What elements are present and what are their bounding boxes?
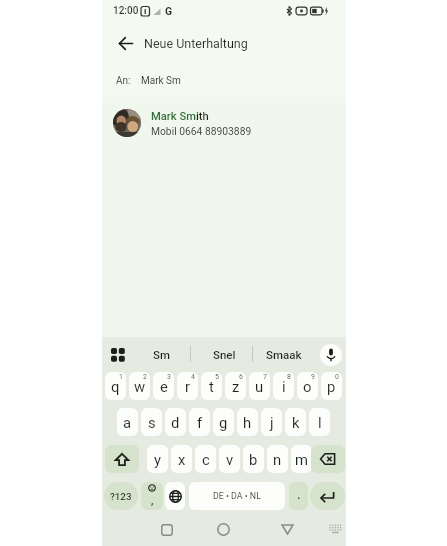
- staticText: n: [273, 451, 282, 468]
- button[interactable]: Smaak: [253, 341, 314, 367]
- staticText: z: [232, 378, 240, 395]
- staticText: d: [171, 414, 180, 431]
- button[interactable]: c: [195, 445, 216, 473]
- button[interactable]: a: [117, 408, 138, 436]
- staticText: m: [295, 451, 308, 468]
- button[interactable]: x: [171, 445, 192, 473]
- button[interactable]: Snel: [194, 341, 255, 367]
- button[interactable]: [273, 372, 294, 400]
- button[interactable]: b: [243, 445, 264, 473]
- staticText: f: [197, 414, 203, 431]
- staticText: ith: [196, 110, 209, 123]
- staticText: i: [282, 378, 286, 395]
- button[interactable]: l: [309, 408, 330, 436]
- staticText: t: [209, 378, 214, 395]
- button[interactable]: [105, 445, 139, 473]
- staticText: j: [270, 414, 274, 431]
- staticText: u: [255, 378, 264, 395]
- button[interactable]: Mark Sm: [102, 102, 346, 143]
- staticText: h: [243, 414, 252, 431]
- staticText: k: [292, 414, 300, 431]
- button[interactable]: [177, 372, 198, 400]
- button[interactable]: v: [219, 445, 240, 473]
- button[interactable]: [165, 482, 185, 510]
- button[interactable]: f: [189, 408, 210, 436]
- button[interactable]: An:: [102, 66, 346, 97]
- staticText: ?123: [110, 491, 132, 502]
- button[interactable]: g: [213, 408, 234, 436]
- staticText: Snel: [213, 348, 236, 361]
- button[interactable]: [110, 347, 125, 362]
- button[interactable]: [225, 372, 246, 400]
- staticText: Neue Unterhaltung: [144, 36, 248, 51]
- button[interactable]: [112, 30, 139, 57]
- staticText: e: [160, 378, 168, 395]
- staticText: v: [226, 451, 234, 468]
- staticText: Mark Sm: [141, 75, 181, 87]
- staticText: p: [327, 378, 336, 395]
- button[interactable]: m: [291, 445, 312, 473]
- button[interactable]: [321, 372, 342, 400]
- staticText: 0: [335, 373, 339, 381]
- button[interactable]: [275, 517, 300, 542]
- button[interactable]: [311, 445, 345, 473]
- button[interactable]: [249, 372, 270, 400]
- button[interactable]: [320, 344, 342, 366]
- button[interactable]: n: [267, 445, 288, 473]
- staticText: 7: [263, 373, 267, 381]
- button[interactable]: h: [237, 408, 258, 436]
- staticText: 2: [143, 373, 147, 381]
- button[interactable]: [153, 372, 174, 400]
- staticText: r: [185, 378, 191, 395]
- staticText: An:: [116, 75, 131, 87]
- button[interactable]: [310, 482, 345, 510]
- staticText: c: [202, 451, 210, 468]
- button[interactable]: ?123: [104, 482, 138, 510]
- staticText: DE • DA • NL: [213, 491, 261, 501]
- staticText: s: [148, 414, 156, 431]
- staticText: o: [303, 378, 312, 395]
- staticText: x: [178, 451, 186, 468]
- staticText: a: [123, 414, 132, 431]
- staticText: .: [297, 487, 301, 502]
- staticText: Smaak: [266, 348, 302, 361]
- button[interactable]: [297, 372, 318, 400]
- staticText: 5: [215, 373, 219, 381]
- button[interactable]: DE • DA • NL: [189, 482, 285, 510]
- button[interactable]: [105, 372, 126, 400]
- button[interactable]: [201, 372, 222, 400]
- button[interactable]: ,: [141, 482, 163, 510]
- staticText: g: [219, 414, 228, 431]
- button[interactable]: [325, 519, 345, 539]
- button[interactable]: [129, 372, 150, 400]
- staticText: q: [111, 378, 120, 395]
- staticText: 3: [167, 373, 171, 381]
- staticText: 1: [119, 373, 123, 381]
- button[interactable]: j: [261, 408, 282, 436]
- button[interactable]: y: [147, 445, 168, 473]
- staticText: b: [249, 451, 258, 468]
- staticText: y: [154, 451, 162, 468]
- staticText: G: [165, 5, 173, 17]
- button[interactable]: [211, 517, 236, 542]
- staticText: 8: [287, 373, 291, 381]
- staticText: l: [318, 414, 322, 431]
- button[interactable]: d: [165, 408, 186, 436]
- button[interactable]: k: [285, 408, 306, 436]
- staticText: Sm: [153, 348, 170, 361]
- button[interactable]: s: [141, 408, 162, 436]
- staticText: 6: [239, 373, 243, 381]
- button[interactable]: Sm: [132, 341, 190, 367]
- staticText: Mobil 0664 88903889: [151, 125, 252, 137]
- staticText: 4: [191, 373, 195, 381]
- staticText: Mark Sm: [151, 110, 196, 123]
- staticText: 12:00: [113, 5, 139, 17]
- button[interactable]: [154, 517, 179, 542]
- staticText: ,: [151, 494, 154, 507]
- staticText: 9: [311, 373, 315, 381]
- button[interactable]: .: [289, 482, 308, 510]
- staticText: w: [134, 378, 146, 395]
